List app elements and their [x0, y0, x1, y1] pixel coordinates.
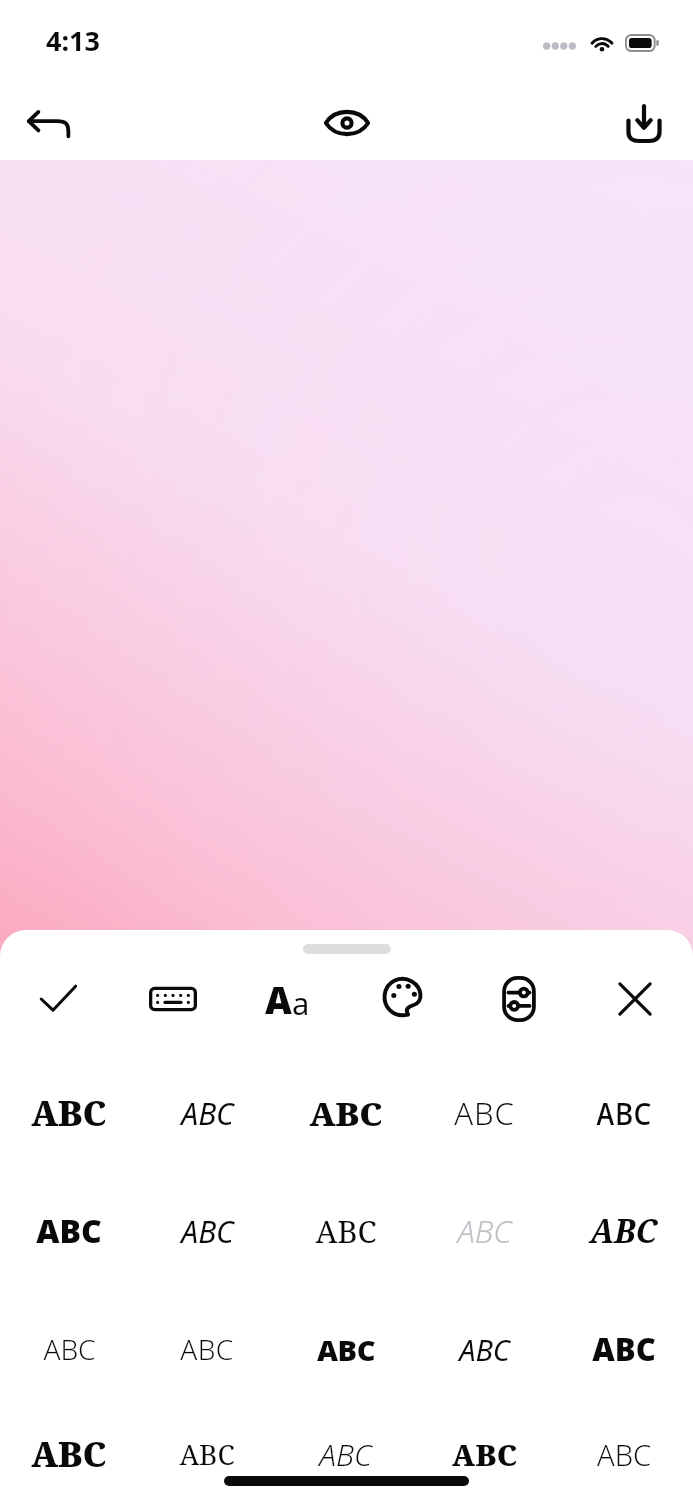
- button[interactable]: ABC: [0, 1054, 138, 1172]
- button[interactable]: ABC: [415, 1172, 554, 1290]
- button[interactable]: Keyboard: [115, 960, 230, 1038]
- button[interactable]: ABC: [276, 1054, 415, 1172]
- staticText: ABC: [452, 1435, 518, 1474]
- staticText: ABC: [592, 1328, 656, 1370]
- button[interactable]: ABC: [415, 1408, 554, 1500]
- staticText: ABC: [457, 1210, 512, 1252]
- staticText: ABC: [43, 1330, 96, 1368]
- staticText: ABC: [181, 1093, 234, 1134]
- button[interactable]: ABC: [554, 1054, 693, 1172]
- staticText: A: [265, 974, 292, 1024]
- button[interactable]: ABC: [0, 1290, 138, 1408]
- button[interactable]: ABC: [276, 1172, 415, 1290]
- staticText: ABC: [31, 1090, 107, 1136]
- staticText: ABC: [315, 1210, 377, 1252]
- staticText: a: [292, 982, 310, 1024]
- button[interactable]: ABC: [554, 1290, 693, 1408]
- button[interactable]: ABC: [554, 1172, 693, 1290]
- button[interactable]: ABC: [554, 1408, 693, 1500]
- staticText: ABC: [454, 1092, 515, 1134]
- button[interactable]: Download: [615, 94, 673, 152]
- staticText: ABC: [459, 1330, 510, 1369]
- staticText: ABC: [179, 1435, 235, 1473]
- staticText: ABC: [36, 1209, 102, 1253]
- button[interactable]: Font: [230, 960, 345, 1038]
- staticText: ABC: [590, 1209, 657, 1253]
- button[interactable]: ABC: [138, 1172, 276, 1290]
- button[interactable]: ABC: [138, 1054, 276, 1172]
- staticText: ABC: [596, 1092, 652, 1134]
- staticText: ABC: [180, 1330, 234, 1368]
- button[interactable]: ABC: [138, 1408, 276, 1500]
- button[interactable]: Close: [577, 960, 693, 1038]
- staticText: ABC: [317, 1330, 375, 1369]
- staticText: ABC: [181, 1211, 234, 1252]
- staticText: ABC: [319, 1434, 372, 1475]
- button[interactable]: Preview: [318, 94, 376, 152]
- button[interactable]: ABC: [138, 1290, 276, 1408]
- staticText: ABC: [597, 1435, 651, 1474]
- button[interactable]: Adjust: [461, 960, 577, 1038]
- button[interactable]: ABC: [0, 1408, 138, 1500]
- button[interactable]: ABC: [0, 1172, 138, 1290]
- staticText: 4:13: [46, 22, 100, 59]
- button[interactable]: ABC: [276, 1290, 415, 1408]
- button[interactable]: ABC: [276, 1408, 415, 1500]
- staticText: ABC: [31, 1431, 107, 1477]
- button[interactable]: ABC: [415, 1054, 554, 1172]
- staticText: ABC: [309, 1091, 383, 1136]
- button[interactable]: ABC: [415, 1290, 554, 1408]
- button[interactable]: Color: [345, 960, 461, 1038]
- button[interactable]: Confirm: [0, 960, 115, 1038]
- button[interactable]: Undo: [20, 94, 78, 152]
